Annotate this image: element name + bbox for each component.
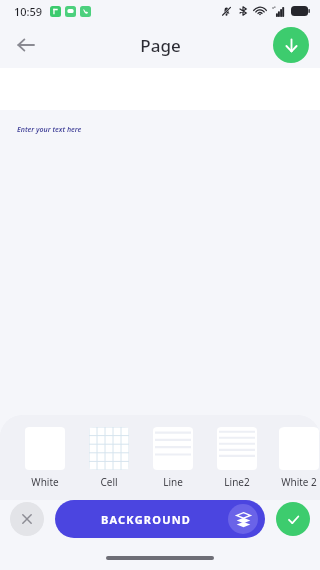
button[interactable]: Cell: [86, 427, 132, 489]
button[interactable]: White 2: [278, 427, 320, 489]
button[interactable]: White: [22, 427, 68, 489]
button[interactable]: Line2: [214, 427, 260, 489]
staticText: Page: [140, 34, 181, 57]
button[interactable]: Back: [6, 25, 46, 65]
staticText: 10:59: [14, 4, 43, 19]
staticText: White 2: [281, 475, 317, 489]
staticText: White: [31, 475, 59, 489]
staticText: Line: [163, 475, 183, 489]
staticText: BACKGROUND: [101, 512, 192, 527]
button[interactable]: Confirm: [276, 502, 310, 536]
button[interactable]: Close: [10, 502, 44, 536]
staticText: Enter your text here: [17, 125, 82, 135]
staticText: Line2: [224, 475, 250, 489]
button[interactable]: Download: [273, 27, 309, 63]
button[interactable]: Line: [150, 427, 196, 489]
button[interactable]: BACKGROUND: [55, 500, 265, 538]
staticText: Cell: [100, 475, 118, 489]
